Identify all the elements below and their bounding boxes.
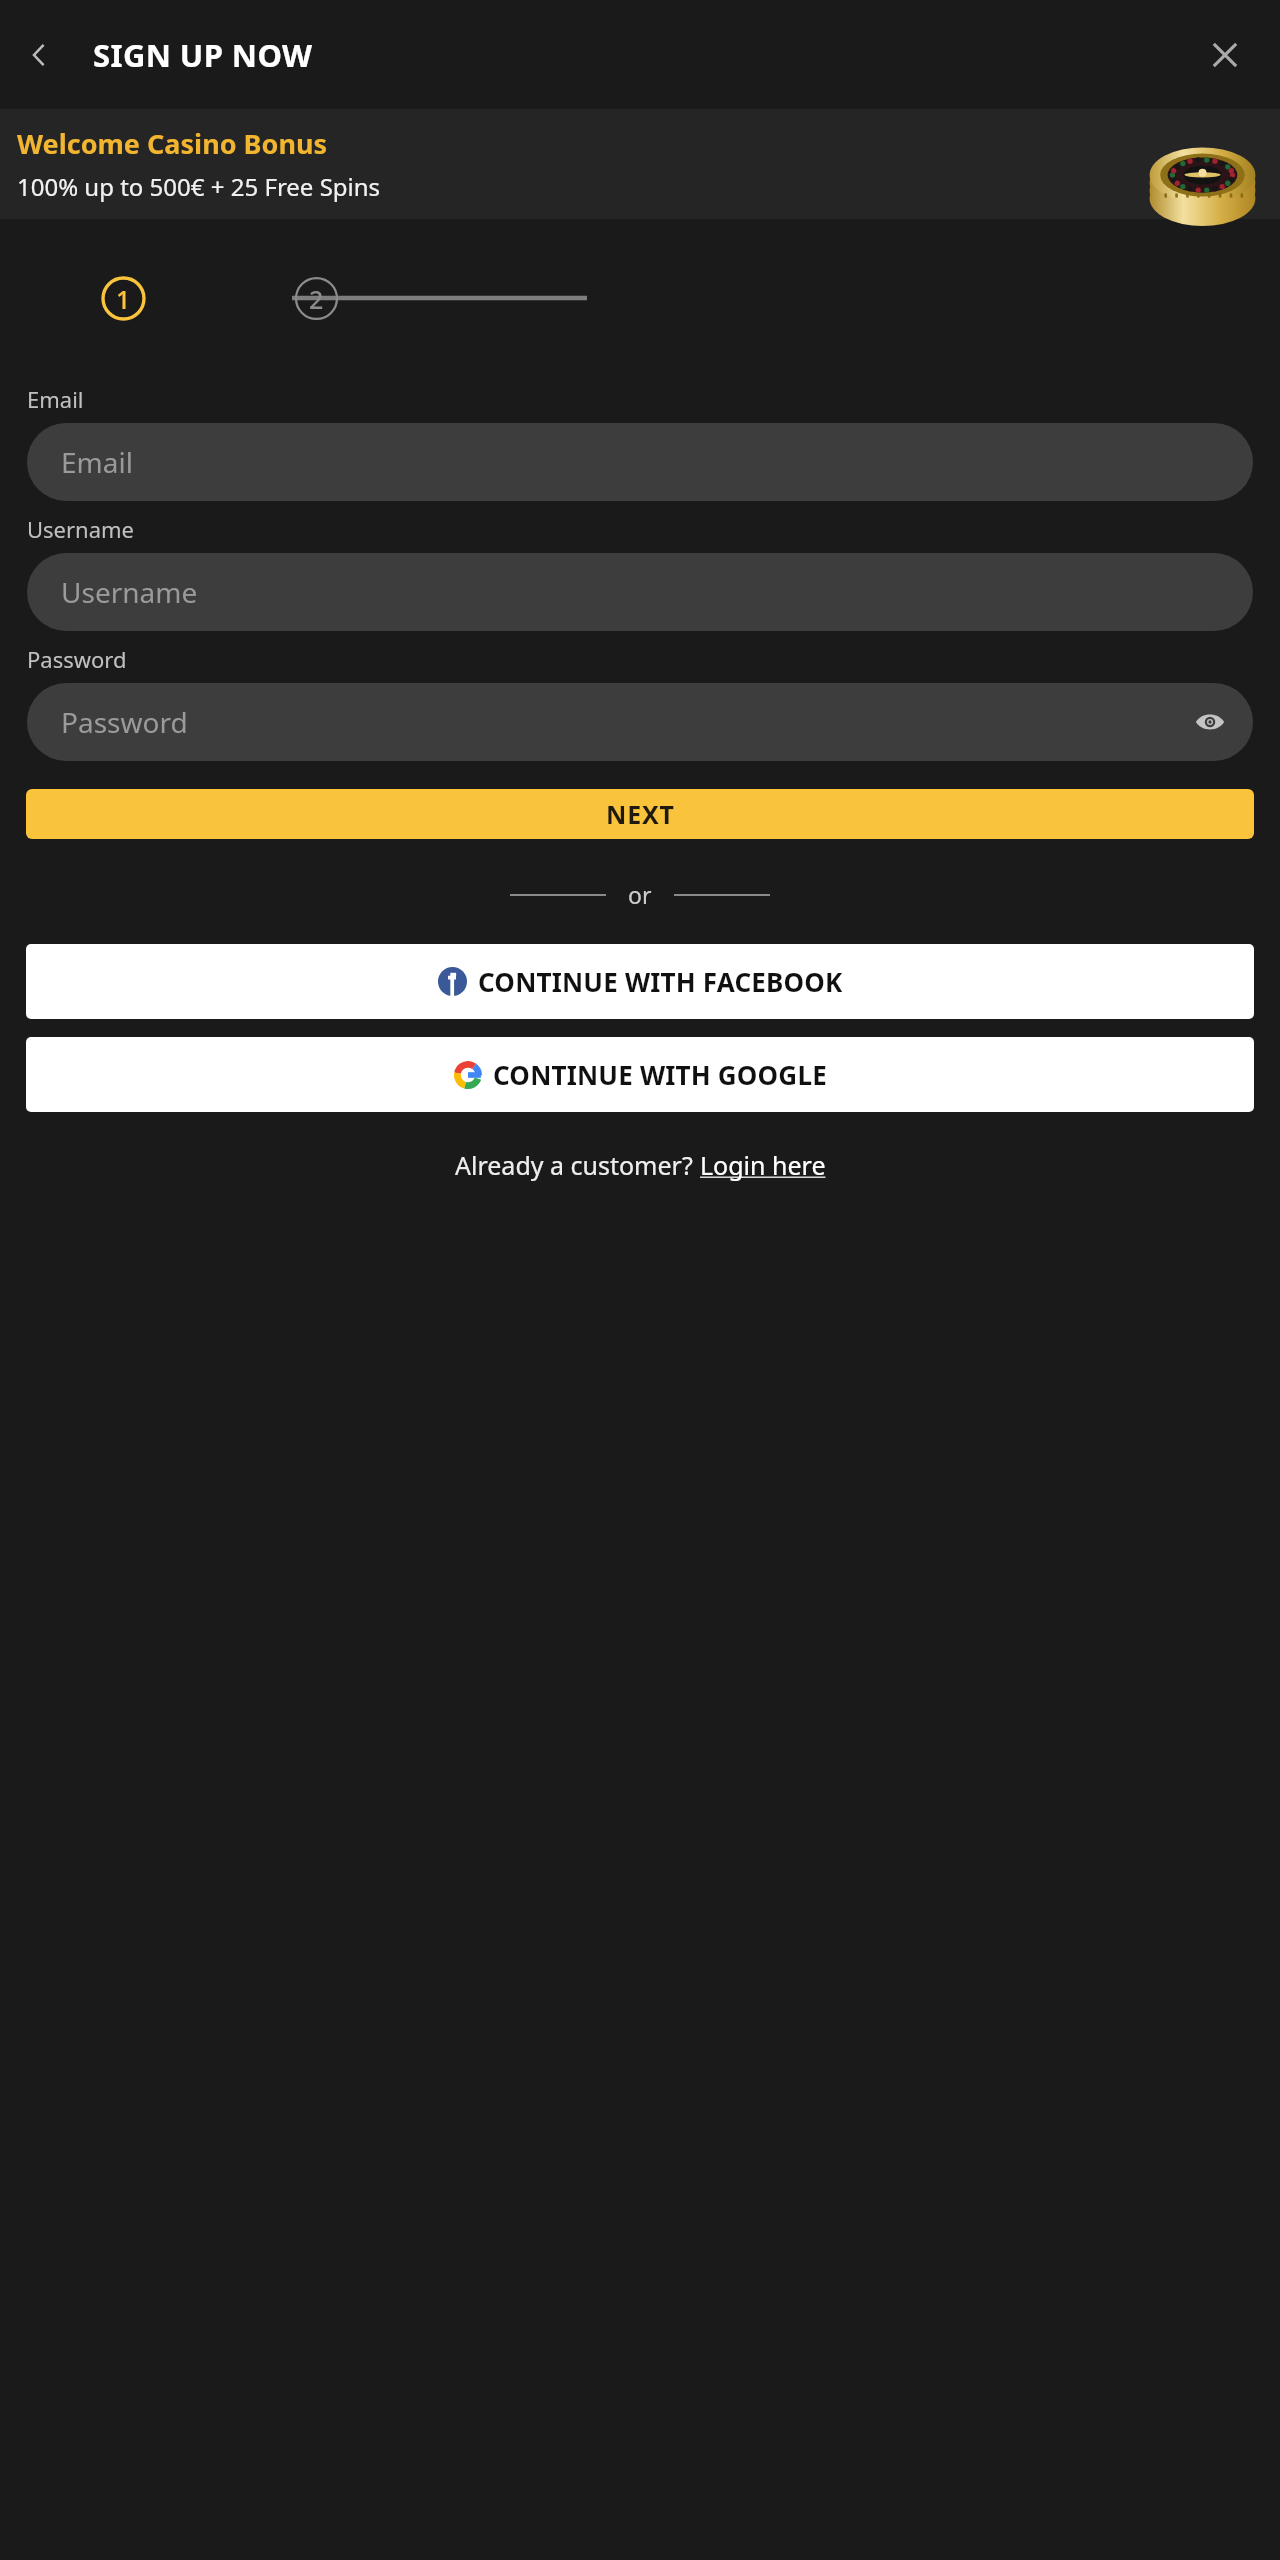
staticText: Username [61,573,198,611]
staticText: 1 [116,282,131,316]
staticText: Email [61,443,133,481]
staticText: Password [27,644,127,674]
staticText: Email [27,384,84,414]
staticText: Login here [700,1148,826,1182]
staticText: Password [61,703,188,741]
button[interactable]: 2 [294,276,339,321]
button[interactable]: Back [10,25,70,85]
staticText: CONTINUE WITH FACEBOOK [478,964,843,999]
button[interactable]: 1 [101,276,146,321]
button[interactable]: Password [27,683,1253,761]
button[interactable]: Username [27,553,1253,631]
staticText: 100% up to 500€ + 25 Free Spins [17,170,381,203]
button[interactable]: Show password [1187,699,1233,745]
button[interactable]: Close [1194,24,1256,86]
button[interactable]: Email [27,423,1253,501]
staticText: Username [27,514,135,544]
staticText: Already a customer? [455,1148,700,1182]
button[interactable]: NEXT [26,789,1254,839]
staticText: CONTINUE WITH GOOGLE [493,1057,827,1092]
button[interactable]: CONTINUE WITH FACEBOOK [26,944,1254,1019]
staticText: NEXT [606,797,675,831]
button[interactable]: Already a customer? [0,1148,1280,1182]
button[interactable]: CONTINUE WITH GOOGLE [26,1037,1254,1112]
staticText: SIGN UP NOW [93,34,313,76]
staticText: or [628,879,652,910]
staticText: Welcome Casino Bonus [17,125,328,162]
staticText: 2 [309,282,324,316]
